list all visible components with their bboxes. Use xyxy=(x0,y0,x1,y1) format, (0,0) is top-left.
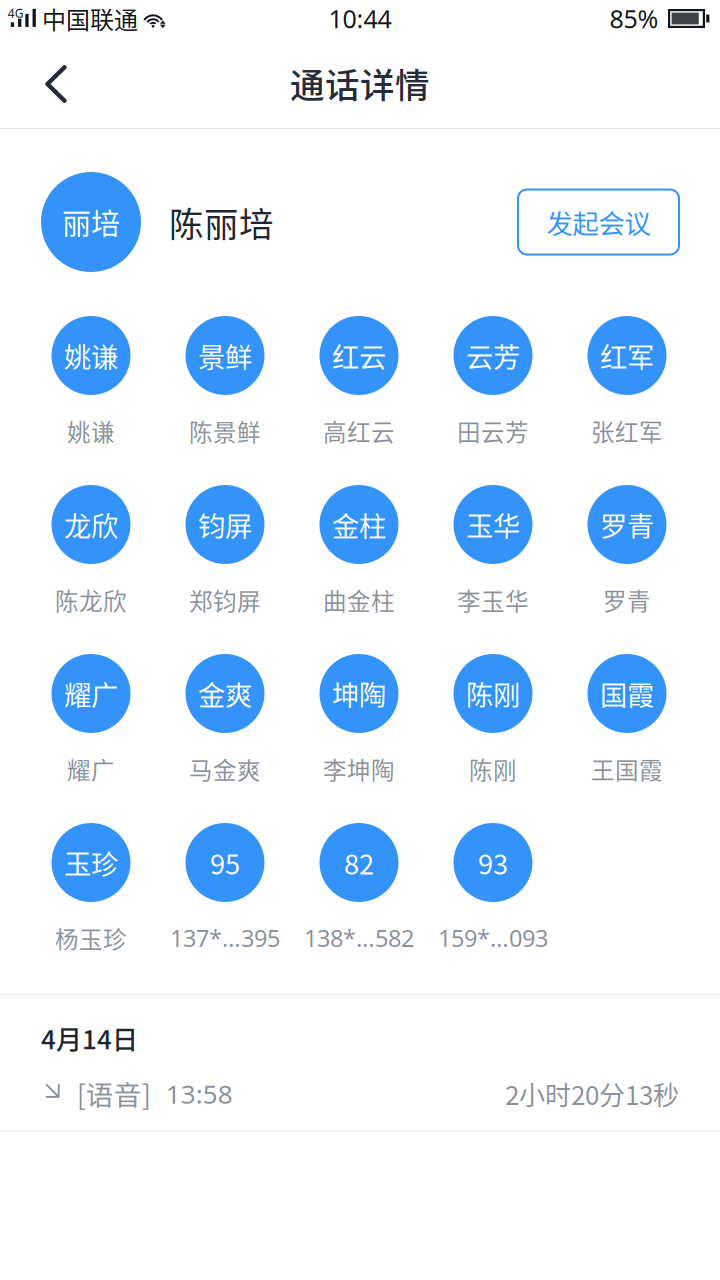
staticText: 杨玉珍 xyxy=(55,921,127,955)
staticText: 马金爽 xyxy=(189,752,261,786)
staticText: 4月14日 xyxy=(41,1019,138,1057)
button[interactable]: 龙欣 xyxy=(24,485,158,615)
staticText: [语音] xyxy=(77,1074,151,1113)
staticText: 高红云 xyxy=(323,414,395,448)
button[interactable]: 陈刚 xyxy=(426,654,560,784)
staticText: 玉华 xyxy=(466,505,520,544)
staticText: 金爽 xyxy=(198,674,252,713)
staticText: 95 xyxy=(210,843,240,882)
staticText: 137*…395 xyxy=(170,922,280,954)
staticText: 坤陶 xyxy=(332,674,386,713)
staticText: 金柱 xyxy=(332,505,386,544)
staticText: 云芳 xyxy=(466,336,520,375)
staticText: 景鲜 xyxy=(198,336,252,375)
button[interactable]: 钧屏 xyxy=(158,485,292,615)
staticText: 红云 xyxy=(332,336,386,375)
staticText: 2小时20分13秒 xyxy=(505,1075,679,1112)
button[interactable]: 耀广 xyxy=(24,654,158,784)
staticText: 85% xyxy=(609,1,658,35)
staticText: 姚谦 xyxy=(64,336,118,375)
staticText: 159*…093 xyxy=(438,922,548,954)
button[interactable]: 姚谦 xyxy=(24,316,158,446)
staticText: 钧屏 xyxy=(198,505,252,544)
button[interactable]: 红军 xyxy=(560,316,694,446)
staticText: 陈刚 xyxy=(466,674,520,713)
staticText: 138*…582 xyxy=(304,922,414,954)
staticText: 王国霞 xyxy=(591,752,663,786)
button[interactable]: 红云 xyxy=(292,316,426,446)
staticText: 发起会议 xyxy=(546,203,650,241)
staticText: 丽培 xyxy=(62,201,120,243)
staticText: 中国联通 xyxy=(42,1,138,36)
button[interactable]: 玉珍 xyxy=(24,823,158,953)
staticText: 罗青 xyxy=(600,505,654,544)
button[interactable]: 国霞 xyxy=(560,654,694,784)
staticText: 耀广 xyxy=(67,752,115,786)
button[interactable]: 发起会议 xyxy=(518,189,679,254)
button[interactable]: 景鲜 xyxy=(158,316,292,446)
staticText: 耀广 xyxy=(64,674,118,713)
staticText: 姚谦 xyxy=(67,414,115,448)
button[interactable]: 95 xyxy=(158,823,292,953)
staticText: 玉珍 xyxy=(64,843,118,882)
staticText: 国霞 xyxy=(600,674,654,713)
staticText: 通话详情 xyxy=(290,58,430,108)
staticText: 龙欣 xyxy=(64,505,118,544)
staticText: 李坤陶 xyxy=(323,752,395,786)
staticText: 4G xyxy=(8,5,24,21)
button[interactable]: Back xyxy=(0,48,90,128)
staticText: 曲金柱 xyxy=(323,583,395,617)
staticText: 红军 xyxy=(600,336,654,375)
staticText: 罗青 xyxy=(603,583,651,617)
button[interactable]: 罗青 xyxy=(560,485,694,615)
button[interactable]: 82 xyxy=(292,823,426,953)
staticText: 李玉华 xyxy=(457,583,529,617)
staticText: 93 xyxy=(478,843,508,882)
button[interactable]: 云芳 xyxy=(426,316,560,446)
staticText: 郑钧屏 xyxy=(189,583,261,617)
staticText: 陈丽培 xyxy=(169,197,274,247)
button[interactable]: 93 xyxy=(426,823,560,953)
staticText: 10:44 xyxy=(328,1,391,35)
button[interactable]: 金柱 xyxy=(292,485,426,615)
staticText: 82 xyxy=(344,843,374,882)
button[interactable]: 玉华 xyxy=(426,485,560,615)
staticText: 陈刚 xyxy=(469,752,517,786)
staticText: 13:58 xyxy=(166,1076,233,1111)
staticText: 田云芳 xyxy=(457,414,529,448)
staticText: 陈景鲜 xyxy=(189,414,261,448)
staticText: 张红军 xyxy=(591,414,663,448)
staticText: 陈龙欣 xyxy=(55,583,127,617)
button[interactable]: 金爽 xyxy=(158,654,292,784)
button[interactable]: 坤陶 xyxy=(292,654,426,784)
